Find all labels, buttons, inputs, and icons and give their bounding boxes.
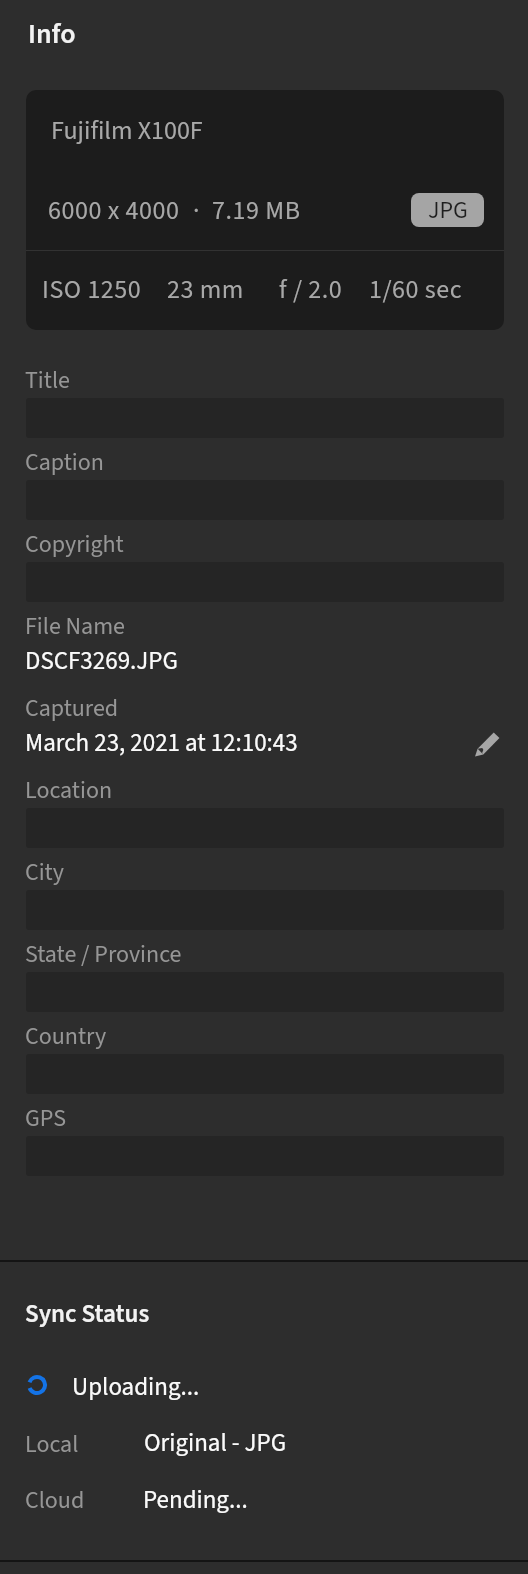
staticText: Uploading... [72, 1369, 200, 1405]
staticText: Local [25, 1427, 79, 1461]
button[interactable]: Edit capture date [475, 729, 501, 755]
staticText: Sync Status [25, 1296, 150, 1332]
staticText: GPS [25, 1101, 66, 1135]
staticText: 7.19 MB [212, 192, 301, 229]
staticText: Cloud [25, 1483, 85, 1517]
staticText: DSCF3269.JPG [25, 643, 178, 679]
staticText: City [25, 855, 64, 889]
staticText: Info [28, 14, 76, 54]
staticText: File Name [25, 609, 126, 643]
staticText: Fujifilm X100F [51, 112, 203, 149]
staticText: JPG [428, 193, 468, 227]
staticText: Captured [25, 691, 119, 725]
staticText: March 23, 2021 at 12:10:43 [25, 725, 298, 761]
staticText: f / 2.0 [279, 271, 343, 308]
staticText: 23 mm [167, 271, 244, 308]
staticText: 1/60 sec [369, 271, 463, 308]
staticText: Caption [25, 445, 104, 479]
button[interactable]: JPG [411, 193, 484, 227]
staticText: Location [25, 773, 113, 807]
staticText: Country [25, 1019, 107, 1053]
staticText: ISO 1250 [42, 271, 142, 308]
staticText: · [193, 192, 201, 229]
staticText: 6000 x 4000 [48, 192, 180, 229]
staticText: Title [25, 363, 70, 397]
staticText: Copyright [25, 527, 124, 561]
staticText: Pending... [143, 1482, 248, 1518]
staticText: Original - JPG [144, 1425, 287, 1461]
staticText: State / Province [25, 937, 182, 971]
